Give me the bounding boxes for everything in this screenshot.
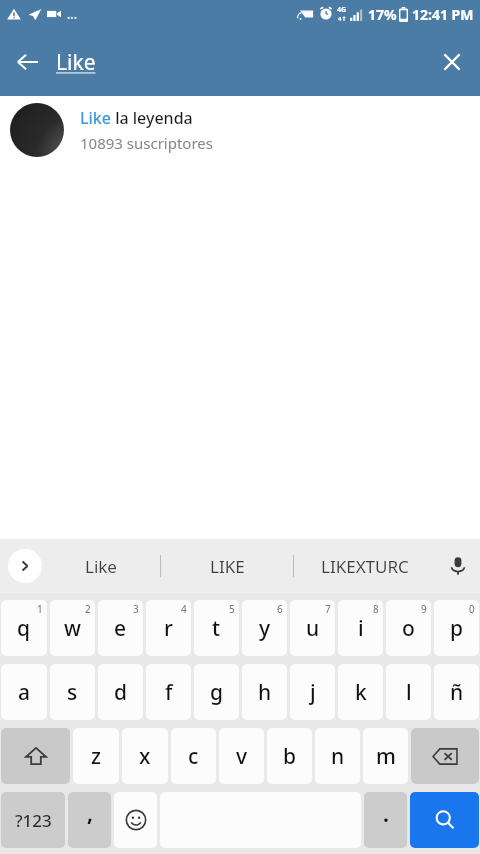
staticText: s bbox=[67, 678, 78, 707]
staticText: Like bbox=[56, 48, 96, 77]
staticText: ... bbox=[67, 6, 78, 22]
staticText: f bbox=[165, 678, 173, 707]
staticText: 4↑ bbox=[338, 15, 347, 23]
button[interactable]: g bbox=[194, 664, 239, 720]
staticText: 4G bbox=[337, 5, 347, 15]
staticText: b bbox=[283, 742, 297, 771]
button[interactable]: j bbox=[290, 664, 335, 720]
staticText: 9 bbox=[421, 602, 427, 616]
staticText: y bbox=[259, 614, 271, 643]
button[interactable]: y bbox=[242, 600, 287, 656]
staticText: 1 bbox=[37, 602, 43, 616]
staticText: t bbox=[212, 614, 221, 643]
button[interactable]: Back bbox=[0, 34, 56, 90]
staticText: z bbox=[91, 742, 102, 771]
staticText: a bbox=[18, 678, 31, 707]
button[interactable]: q bbox=[1, 600, 47, 656]
staticText: 5 bbox=[229, 602, 235, 616]
button[interactable]: h bbox=[242, 664, 287, 720]
staticText: x bbox=[139, 742, 151, 771]
button[interactable]: s bbox=[50, 664, 95, 720]
staticText: ñ bbox=[450, 678, 464, 707]
staticText: v bbox=[236, 742, 248, 771]
button[interactable]: ?123 bbox=[1, 792, 65, 848]
staticText: 7 bbox=[325, 602, 331, 616]
staticText: p bbox=[450, 614, 464, 643]
staticText: 6 bbox=[277, 602, 283, 616]
staticText: d bbox=[114, 678, 128, 707]
button[interactable]: m bbox=[363, 728, 408, 784]
staticText: 4 bbox=[181, 602, 187, 616]
staticText: u bbox=[306, 614, 320, 643]
staticText: . bbox=[383, 800, 389, 829]
button[interactable]: Like la leyenda bbox=[0, 96, 480, 164]
button[interactable]: Emoji bbox=[114, 792, 157, 848]
staticText: g bbox=[210, 678, 224, 707]
staticText: h bbox=[258, 678, 272, 707]
button[interactable]: e bbox=[98, 600, 143, 656]
button[interactable]: z bbox=[73, 728, 119, 784]
button[interactable]: k bbox=[338, 664, 383, 720]
staticText: 0 bbox=[469, 602, 475, 616]
button[interactable]: Clear bbox=[424, 34, 480, 90]
button[interactable]: n bbox=[315, 728, 360, 784]
button[interactable]: Like bbox=[42, 539, 160, 593]
staticText: w bbox=[64, 614, 81, 643]
button[interactable]: ñ bbox=[434, 664, 479, 720]
button[interactable]: b bbox=[267, 728, 312, 784]
button[interactable]: a bbox=[1, 664, 47, 720]
button[interactable]: w bbox=[50, 600, 95, 656]
staticText: LIKE bbox=[210, 555, 245, 578]
staticText: c bbox=[188, 742, 199, 771]
staticText: k bbox=[355, 678, 367, 707]
staticText: Like la leyenda bbox=[80, 107, 193, 129]
staticText: 8 bbox=[373, 602, 379, 616]
button[interactable]: Backspace bbox=[411, 728, 479, 784]
button[interactable]: o bbox=[386, 600, 431, 656]
button[interactable]: Expand suggestions bbox=[8, 549, 42, 583]
button[interactable]: , bbox=[68, 792, 111, 848]
staticText: i bbox=[358, 614, 364, 643]
staticText: j bbox=[310, 678, 316, 707]
staticText: 17% bbox=[368, 5, 397, 24]
button[interactable]: l bbox=[386, 664, 431, 720]
button[interactable]: x bbox=[122, 728, 168, 784]
staticText: Like bbox=[85, 555, 117, 578]
button[interactable]: u bbox=[290, 600, 335, 656]
button[interactable]: p bbox=[434, 600, 479, 656]
staticText: 10893 suscriptores bbox=[80, 133, 213, 153]
staticText: ?123 bbox=[15, 809, 52, 832]
button[interactable]: Search bbox=[410, 792, 479, 848]
button[interactable]: d bbox=[98, 664, 143, 720]
staticText: LIKEXTURC bbox=[321, 555, 409, 578]
staticText: r bbox=[164, 614, 173, 643]
button[interactable]: Like bbox=[56, 28, 424, 96]
button[interactable]: f bbox=[146, 664, 191, 720]
button[interactable]: Voice input bbox=[436, 539, 480, 593]
staticText: e bbox=[114, 614, 127, 643]
staticText: q bbox=[17, 614, 31, 643]
button[interactable]: . bbox=[364, 792, 407, 848]
staticText: n bbox=[331, 742, 345, 771]
staticText: 3 bbox=[133, 602, 139, 616]
button[interactable]: i bbox=[338, 600, 383, 656]
button[interactable]: Shift bbox=[1, 728, 70, 784]
staticText: 12:41 PM bbox=[412, 5, 474, 24]
button[interactable]: LIKE bbox=[161, 539, 293, 593]
staticText: o bbox=[402, 614, 415, 643]
staticText: 2 bbox=[85, 602, 91, 616]
button[interactable]: c bbox=[171, 728, 216, 784]
button[interactable]: v bbox=[219, 728, 264, 784]
staticText: , bbox=[87, 799, 93, 828]
staticText: l bbox=[406, 678, 412, 707]
button[interactable]: LIKEXTURC bbox=[294, 539, 436, 593]
button[interactable]: t bbox=[194, 600, 239, 656]
button[interactable]: r bbox=[146, 600, 191, 656]
staticText: m bbox=[376, 742, 396, 771]
